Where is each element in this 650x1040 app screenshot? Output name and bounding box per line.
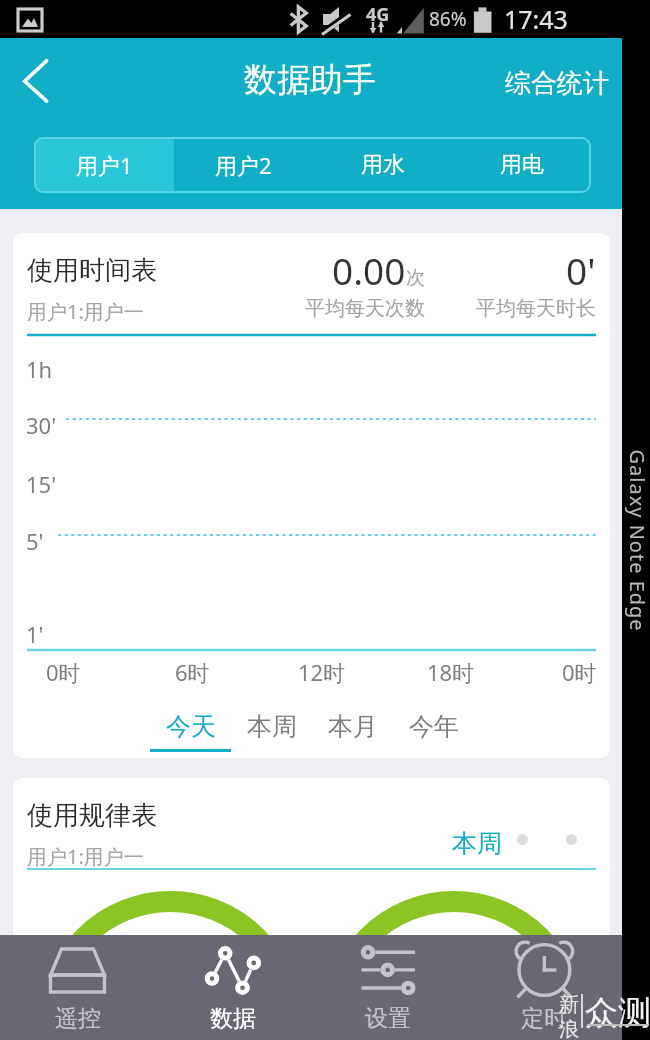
button[interactable]: Data [155, 935, 310, 1040]
staticText: 浪 [559, 1017, 579, 1040]
staticText: 使用规律表 [27, 799, 157, 832]
button[interactable]: 用电 [452, 137, 591, 193]
staticText: 1' [26, 619, 44, 649]
button[interactable]: 用户1 [34, 137, 174, 193]
button[interactable]: Back [4, 40, 66, 102]
button[interactable]: 本周 [231, 711, 312, 752]
staticText: 15' [26, 469, 57, 499]
staticText: 平均每天次数 [305, 296, 425, 321]
staticText: 12时 [298, 657, 346, 687]
button[interactable]: 本周 [452, 828, 502, 859]
staticText: 数据 [210, 1004, 256, 1033]
staticText: 86% [429, 6, 467, 32]
staticText: 定时 [521, 1004, 567, 1033]
staticText: 18时 [427, 657, 475, 687]
staticText: 遥控 [55, 1004, 101, 1033]
staticText: Galaxy Note Edge [623, 449, 650, 632]
staticText: 用水 [361, 151, 405, 179]
button[interactable]: 用水 [313, 137, 452, 193]
staticText: 使用时间表 [27, 254, 157, 287]
staticText: 新 [559, 992, 579, 1017]
button[interactable]: 今天 [150, 711, 231, 752]
staticText: 0.00 [332, 245, 406, 295]
staticText: 用户1:用户一 [27, 843, 144, 870]
staticText: 17:43 [504, 2, 568, 36]
staticText: 平均每天时长 [476, 296, 596, 321]
staticText: 6时 [175, 657, 210, 687]
staticText: 本月 [328, 711, 378, 742]
staticText: 用户1 [76, 150, 133, 180]
staticText: 用户1:用户一 [27, 298, 144, 325]
staticText: 众测 [585, 992, 650, 1034]
button[interactable]: Remote [0, 935, 155, 1040]
button[interactable]: 综合统计 [492, 57, 622, 110]
staticText: 30' [26, 410, 57, 440]
staticText: 综合统计 [505, 67, 609, 100]
staticText: 今天 [166, 711, 216, 742]
button[interactable]: Timer [466, 935, 622, 1040]
button[interactable]: 用户2 [174, 137, 313, 193]
staticText: 用户2 [215, 150, 272, 180]
staticText: 1h [26, 354, 53, 384]
staticText: 用电 [500, 151, 544, 179]
staticText: 数据助手 [244, 59, 376, 101]
button[interactable]: 本月 [312, 711, 393, 752]
staticText: 今年 [409, 711, 459, 742]
staticText: 5' [26, 526, 44, 556]
button[interactable]: 今年 [393, 711, 474, 752]
staticText: 0' [566, 245, 596, 295]
staticText: 4G [366, 2, 390, 27]
staticText: 0时 [562, 657, 597, 687]
staticText: 设置 [365, 1004, 411, 1033]
staticText: 次 [406, 266, 425, 290]
staticText: 本周 [247, 711, 297, 742]
button[interactable]: Settings [310, 935, 466, 1040]
staticText: 0时 [46, 657, 81, 687]
